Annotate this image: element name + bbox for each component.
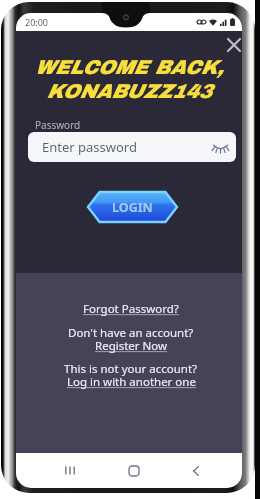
button[interactable]: LOGIN <box>88 192 177 222</box>
button[interactable]: Home <box>129 453 193 488</box>
staticText: This is not your account? <box>64 361 198 377</box>
button[interactable]: Recent apps <box>65 453 129 488</box>
button[interactable]: Log in with another one <box>67 374 196 390</box>
button[interactable]: Show password <box>211 138 229 156</box>
staticText: Enter password <box>42 138 137 156</box>
button[interactable]: Close <box>223 34 242 55</box>
button[interactable]: Back <box>193 453 242 488</box>
staticText: Forgot Password? <box>83 301 179 317</box>
staticText: WELCOME BACK, KONABUZZ143 <box>16 56 242 102</box>
staticText: Don't have an account? <box>68 325 194 341</box>
staticText: Log in with another one <box>67 374 196 390</box>
staticText: 20:00 <box>25 16 49 28</box>
staticText: Register Now <box>95 338 168 354</box>
button[interactable]: Enter password <box>28 132 236 162</box>
staticText: Password <box>35 118 81 132</box>
button[interactable]: Register Now <box>95 338 168 354</box>
button[interactable]: Forgot Password? <box>83 301 179 317</box>
staticText: LOGIN <box>112 199 153 216</box>
